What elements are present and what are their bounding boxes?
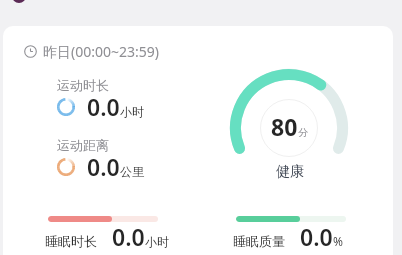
staticText: 运动时长 <box>57 77 109 93</box>
staticText: 健康 <box>276 163 304 181</box>
staticText: 小时 <box>120 104 144 119</box>
staticText: 公里 <box>120 164 144 179</box>
staticText: 小时 <box>145 234 169 249</box>
staticText: 运动距离 <box>57 137 109 153</box>
staticText: % <box>333 233 343 249</box>
staticText: 0.0 <box>300 221 333 252</box>
staticText: 昨日(00:00~23:59) <box>43 42 159 61</box>
staticText: 睡眠时长 <box>45 233 97 249</box>
staticText: 分 <box>298 126 308 139</box>
staticText: 80 <box>271 111 298 142</box>
staticText: 0.0 <box>87 91 120 122</box>
staticText: 0.0 <box>87 151 120 182</box>
staticText: 睡眠质量 <box>233 233 285 249</box>
button[interactable]: 昨日(00:00~23:59) <box>3 26 393 255</box>
staticText: 0.0 <box>112 221 145 252</box>
